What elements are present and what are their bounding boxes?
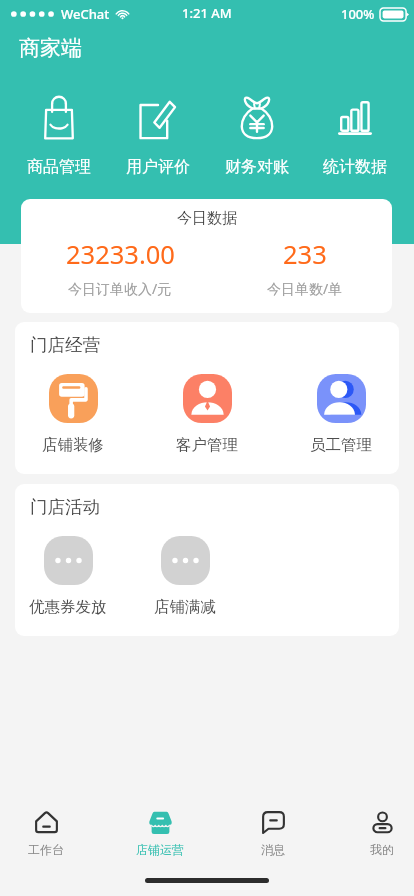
button[interactable]: 店铺运营 xyxy=(110,810,210,857)
button[interactable]: 商品管理 xyxy=(13,94,105,178)
staticText: 工作台 xyxy=(28,842,64,857)
staticText: 财务对账 xyxy=(225,157,289,177)
button[interactable]: 店铺装修 xyxy=(13,374,133,455)
button[interactable]: 员工管理 xyxy=(281,374,401,455)
staticText: 店铺运营 xyxy=(136,842,184,857)
staticText: 233 xyxy=(283,237,327,272)
staticText: 员工管理 xyxy=(310,435,372,455)
staticText: 店铺装修 xyxy=(42,435,104,455)
button[interactable]: 财务对账 xyxy=(211,94,303,178)
button[interactable]: 工作台 xyxy=(0,810,96,857)
staticText: 用户评价 xyxy=(126,157,190,177)
staticText: 100% xyxy=(341,5,375,23)
staticText: 今日订单收入/元 xyxy=(68,279,172,298)
button[interactable]: 店铺满减 xyxy=(125,536,245,617)
staticText: 商品管理 xyxy=(27,157,91,177)
staticText: 今日数据 xyxy=(177,209,237,228)
staticText: 23233.00 xyxy=(66,237,175,272)
button[interactable]: 消息 xyxy=(223,810,323,857)
staticText: 今日单数/单 xyxy=(267,279,343,298)
staticText: 优惠券发放 xyxy=(29,597,107,617)
staticText: 客户管理 xyxy=(176,435,238,455)
button[interactable]: 今日数据 xyxy=(21,199,392,313)
button[interactable]: 统计数据 xyxy=(309,94,401,178)
button[interactable]: 客户管理 xyxy=(147,374,267,455)
staticText: 店铺满减 xyxy=(154,597,216,617)
staticText: 门店经营 xyxy=(30,334,100,356)
staticText: WeChat xyxy=(61,5,110,23)
button[interactable]: 优惠券发放 xyxy=(8,536,128,617)
staticText: 商家端 xyxy=(19,35,82,61)
button[interactable]: 用户评价 xyxy=(112,94,204,178)
button[interactable]: 我的 xyxy=(332,810,414,857)
staticText: 统计数据 xyxy=(323,157,387,177)
staticText: 我的 xyxy=(370,842,394,857)
staticText: 消息 xyxy=(261,842,285,857)
staticText: 门店活动 xyxy=(30,496,100,518)
staticText: 1:21 AM xyxy=(182,4,232,22)
